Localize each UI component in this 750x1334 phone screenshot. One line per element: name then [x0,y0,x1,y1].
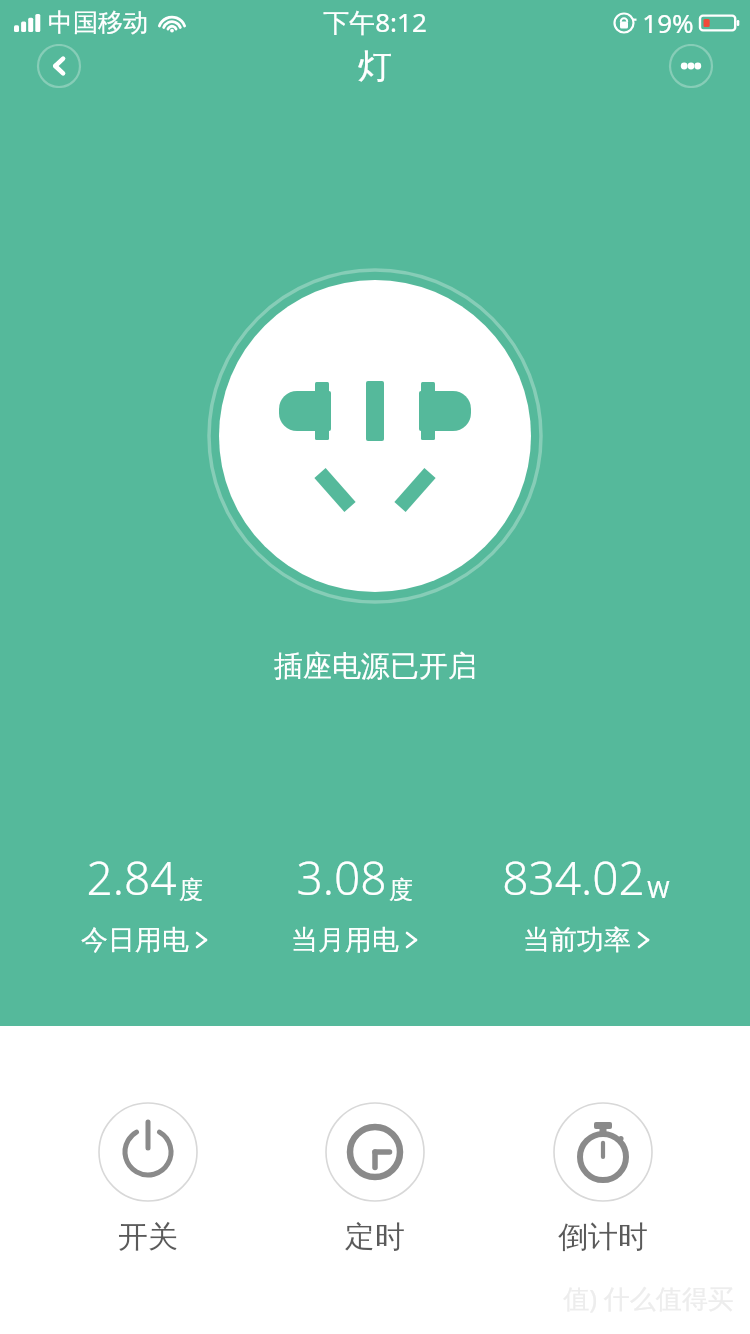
staticText: 下午8:12 [323,4,427,40]
button[interactable]: Back [28,44,90,88]
staticText: 中国移动 [48,7,148,38]
button[interactable]: 3.08 [287,846,421,957]
button[interactable]: 2.84 [77,846,211,957]
staticText: 834.02 [502,846,645,909]
staticText: 3.08 [296,846,387,909]
button[interactable]: Power toggle [68,1098,228,1260]
staticText: 度 [179,875,203,905]
button[interactable]: Timer schedule [295,1098,455,1260]
staticText: 插座电源已开启 [274,648,477,685]
staticText: 灯 [358,45,392,88]
button[interactable]: 834.02 [498,846,674,957]
staticText: 值) 什么值得买 [563,1280,734,1316]
staticText: 倒计时 [558,1218,648,1256]
button[interactable]: More options [660,44,722,88]
staticText: 2.84 [86,846,177,909]
button[interactable]: Countdown [523,1098,683,1260]
staticText: 今日用电 [81,923,189,957]
staticText: 当月用电 [291,923,399,957]
staticText: 19% [642,5,694,40]
staticText: 定时 [345,1218,405,1256]
staticText: 当前功率 [523,923,631,957]
staticText: 度 [389,875,413,905]
staticText: W [647,872,670,905]
staticText: 开关 [118,1218,178,1256]
